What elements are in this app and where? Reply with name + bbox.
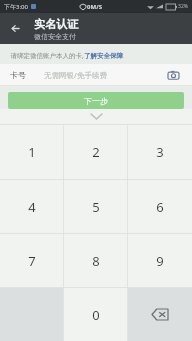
button[interactable]: Delete	[128, 288, 192, 341]
staticText: 0M/S	[87, 3, 102, 11]
button[interactable]: 8	[64, 234, 128, 287]
staticText: 1	[28, 143, 36, 161]
button[interactable]: 卡号	[0, 64, 192, 85]
staticText: 了解安全保障	[84, 52, 123, 60]
button[interactable]: 9	[128, 234, 192, 287]
staticText: 下一步	[84, 96, 108, 106]
staticText: 5	[92, 198, 100, 216]
button[interactable]: 6	[128, 180, 192, 233]
staticText: 32%	[178, 3, 188, 10]
staticText: 4	[28, 198, 36, 216]
button[interactable]: 1	[0, 125, 64, 179]
staticText: 实名认证	[34, 17, 78, 31]
button[interactable]: Scan card	[164, 66, 182, 84]
button[interactable]: 5	[64, 180, 128, 233]
button[interactable]: 下一步	[8, 92, 184, 109]
staticText: 卡号	[10, 70, 26, 80]
button[interactable]: 3	[128, 125, 192, 179]
button[interactable]: 了解安全保障	[84, 52, 123, 60]
button[interactable]: 0	[64, 288, 128, 341]
staticText: 3	[156, 143, 164, 161]
button[interactable]: 7	[0, 234, 64, 287]
staticText: 9	[156, 252, 164, 270]
staticText: 下午3:00	[4, 3, 28, 11]
staticText: 7	[28, 252, 36, 270]
staticText: 6	[156, 198, 164, 216]
staticText: 微信安全支付	[34, 32, 76, 41]
button[interactable]: Hide keyboard	[0, 109, 192, 124]
staticText: 请绑定微信账户本人的卡,	[10, 51, 84, 60]
button[interactable]: 4	[0, 180, 64, 233]
staticText: 2	[92, 143, 100, 161]
staticText: 8	[92, 252, 100, 270]
button[interactable]: Back	[0, 13, 34, 44]
button[interactable]: 2	[64, 125, 128, 179]
staticText: 无需网银/免手续费	[44, 70, 107, 80]
staticText: 0	[92, 306, 100, 324]
